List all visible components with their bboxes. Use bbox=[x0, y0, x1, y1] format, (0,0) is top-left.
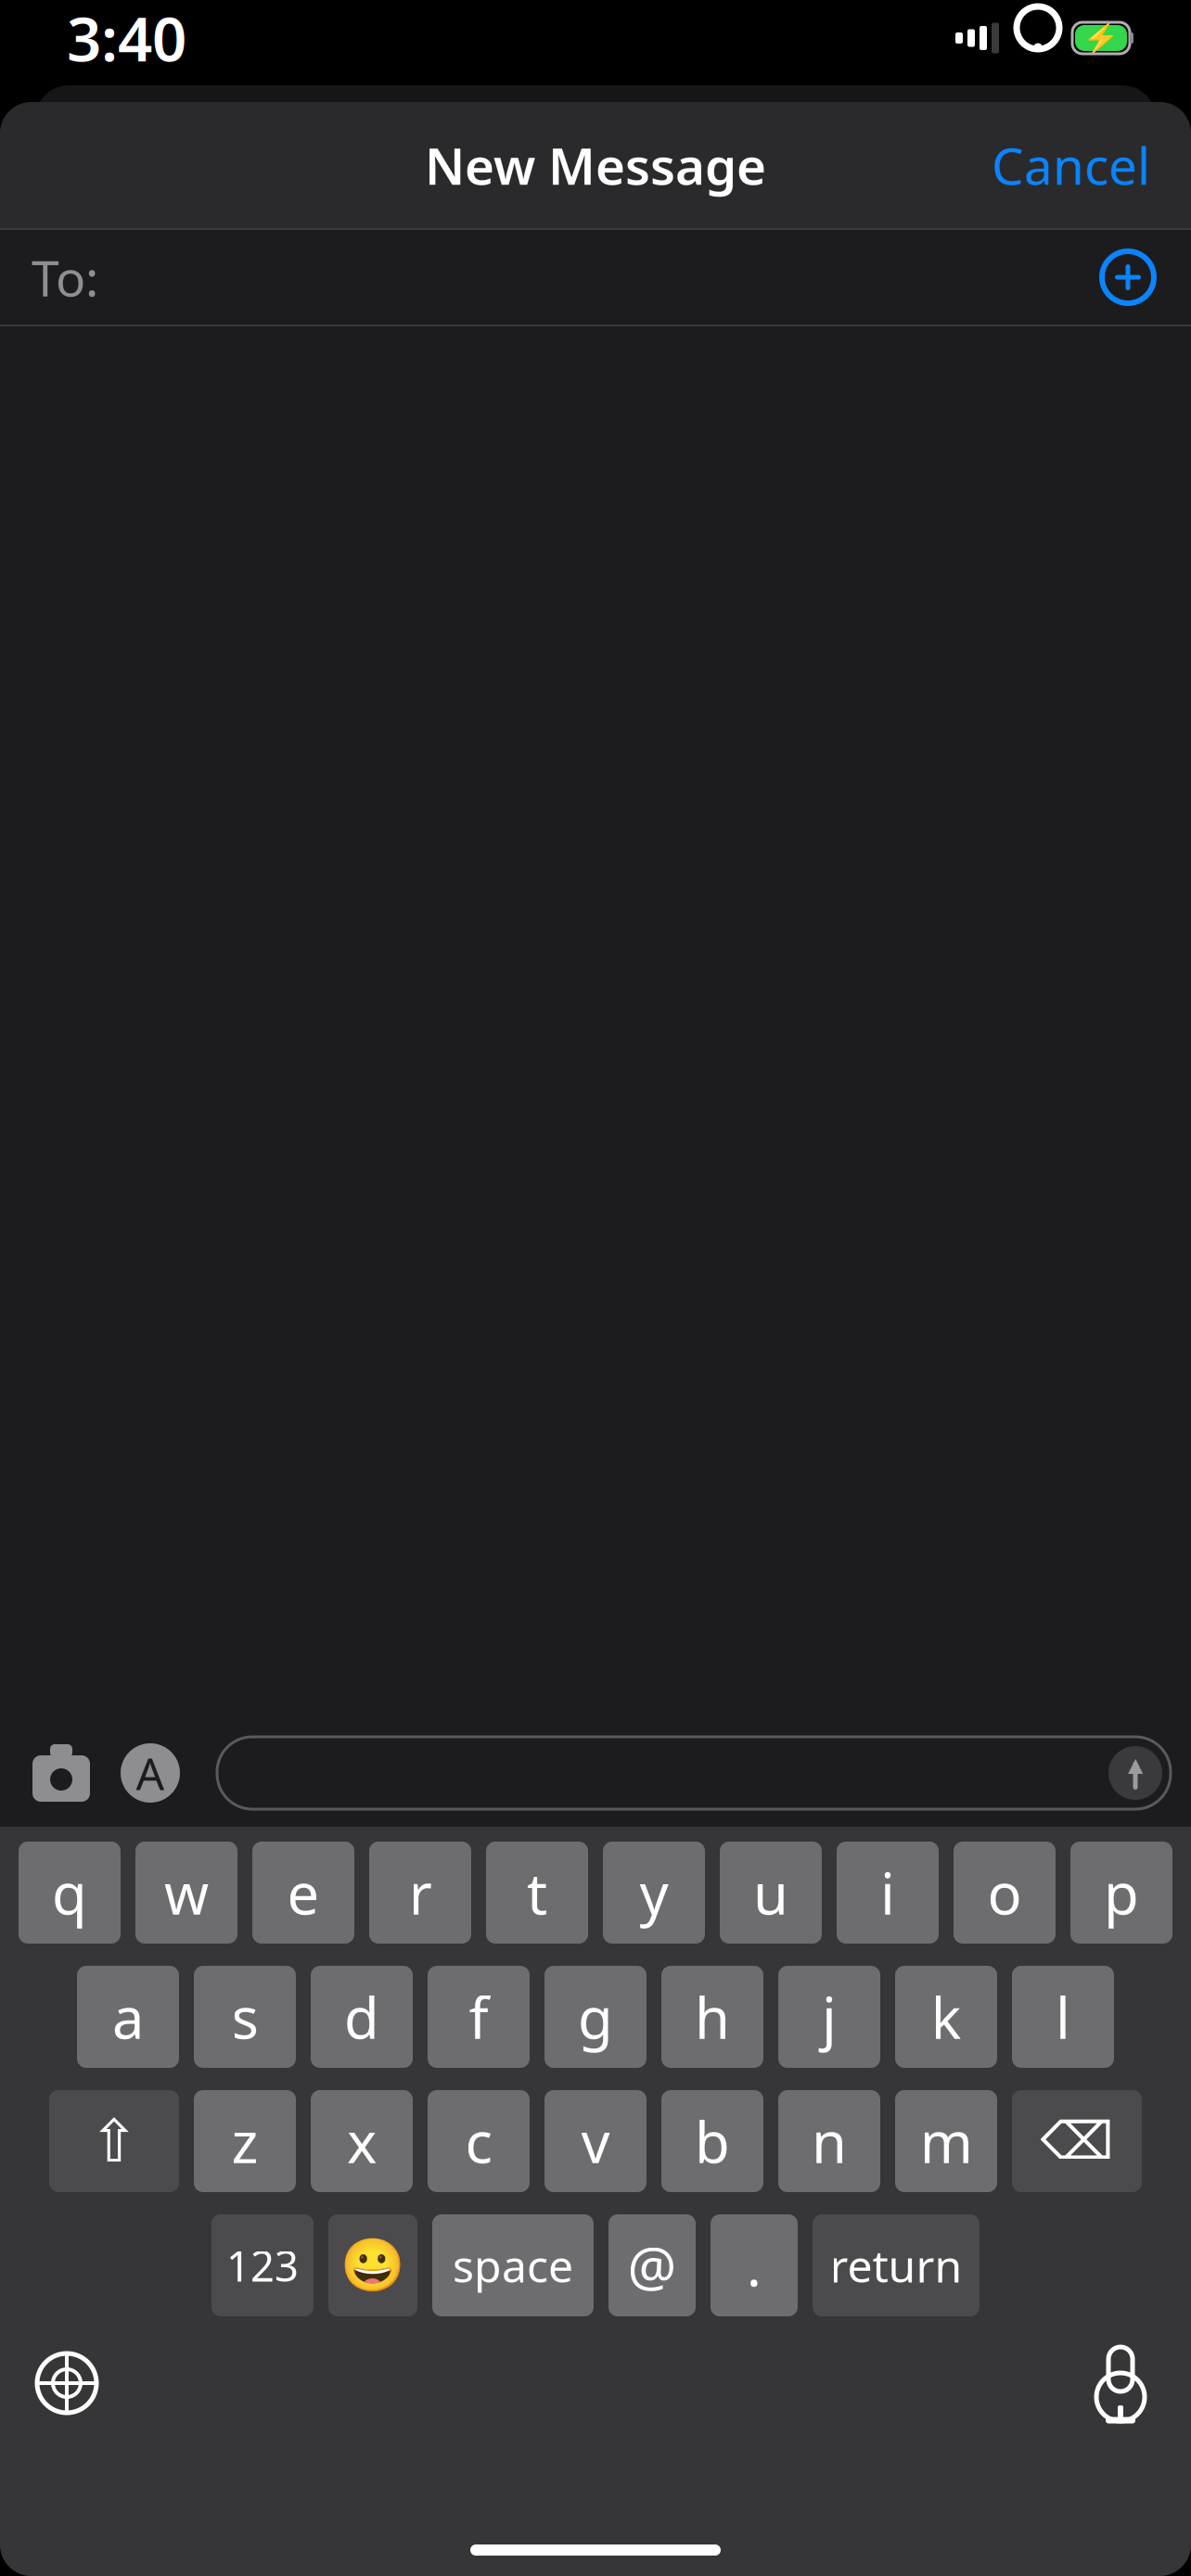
staticText: A bbox=[136, 1743, 165, 1802]
staticText: c bbox=[465, 2103, 492, 2179]
button[interactable]: l bbox=[1012, 1966, 1114, 2068]
button[interactable]: return bbox=[813, 2214, 980, 2316]
staticText: q bbox=[52, 1855, 87, 1930]
button[interactable]: h bbox=[661, 1966, 763, 2068]
staticText: m bbox=[920, 2103, 973, 2179]
staticText: x bbox=[347, 2103, 377, 2179]
button[interactable]: z bbox=[194, 2090, 296, 2192]
button[interactable]: y bbox=[603, 1842, 705, 1944]
button[interactable]: Camera bbox=[22, 1730, 100, 1816]
button[interactable]: s bbox=[194, 1966, 296, 2068]
staticText: ▲ bbox=[1128, 1753, 1143, 1776]
button[interactable]: 😀 bbox=[328, 2214, 417, 2316]
button[interactable]: . bbox=[711, 2214, 798, 2316]
staticText: r bbox=[409, 1855, 432, 1930]
button[interactable]: Cancel bbox=[973, 117, 1169, 214]
staticText: 😀 bbox=[340, 2236, 405, 2295]
button[interactable]: p bbox=[1070, 1842, 1172, 1944]
staticText: b bbox=[695, 2103, 730, 2179]
staticText: a bbox=[112, 1979, 144, 2055]
staticText: y bbox=[640, 1855, 668, 1930]
staticText: e bbox=[287, 1855, 320, 1930]
staticText: return bbox=[830, 2236, 962, 2295]
button[interactable]: b bbox=[661, 2090, 763, 2192]
staticText: space bbox=[453, 2236, 573, 2295]
staticText: j bbox=[822, 1979, 837, 2055]
button[interactable]: x bbox=[311, 2090, 413, 2192]
button[interactable]: m bbox=[895, 2090, 997, 2192]
button[interactable]: t bbox=[486, 1842, 588, 1944]
button[interactable]: d bbox=[311, 1966, 413, 2068]
button[interactable]: Add contact bbox=[1087, 236, 1169, 318]
staticText: z bbox=[231, 2103, 258, 2179]
button[interactable]: g bbox=[544, 1966, 647, 2068]
staticText: ⚡ bbox=[1082, 21, 1120, 55]
button[interactable]: c bbox=[428, 2090, 530, 2192]
staticText: h bbox=[695, 1979, 730, 2055]
staticText: g bbox=[578, 1979, 613, 2055]
button[interactable]: ⌫ bbox=[1012, 2090, 1142, 2192]
staticText: k bbox=[931, 1979, 961, 2055]
staticText: ⇧ bbox=[89, 2107, 139, 2175]
button[interactable]: ⇧ bbox=[49, 2090, 179, 2192]
staticText: New Message bbox=[425, 131, 766, 199]
button[interactable]: n bbox=[778, 2090, 880, 2192]
button[interactable]: u bbox=[720, 1842, 822, 1944]
button[interactable]: Message field bbox=[217, 1737, 1171, 1809]
button[interactable]: v bbox=[544, 2090, 647, 2192]
button[interactable]: r bbox=[369, 1842, 471, 1944]
button[interactable]: q bbox=[19, 1842, 121, 1944]
button[interactable]: space bbox=[432, 2214, 594, 2316]
staticText: t bbox=[527, 1855, 547, 1930]
staticText: p bbox=[1104, 1855, 1139, 1930]
button[interactable]: k bbox=[895, 1966, 997, 2068]
button[interactable]: 123 bbox=[211, 2214, 314, 2316]
staticText: Cancel bbox=[992, 131, 1150, 199]
button[interactable]: i bbox=[837, 1842, 939, 1944]
staticText: 3:40 bbox=[67, 0, 186, 78]
staticText: s bbox=[231, 1979, 258, 2055]
staticText: u bbox=[753, 1855, 788, 1930]
staticText: @ bbox=[628, 2229, 677, 2301]
button[interactable]: Apps bbox=[111, 1730, 189, 1816]
button[interactable]: a bbox=[77, 1966, 179, 2068]
button[interactable]: @ bbox=[608, 2214, 696, 2316]
staticText: o bbox=[987, 1855, 1022, 1930]
staticText: f bbox=[469, 1979, 488, 2055]
staticText: w bbox=[164, 1855, 209, 1930]
button[interactable]: j bbox=[778, 1966, 880, 2068]
staticText: . bbox=[747, 2229, 762, 2301]
staticText: 123 bbox=[226, 2237, 299, 2293]
button[interactable]: Switch keyboard bbox=[20, 2337, 113, 2429]
staticText: i bbox=[880, 1855, 895, 1930]
staticText: To: bbox=[32, 244, 98, 310]
button[interactable]: f bbox=[428, 1966, 530, 2068]
button[interactable]: Dictation bbox=[1074, 2337, 1167, 2429]
button[interactable]: o bbox=[954, 1842, 1056, 1944]
staticText: d bbox=[344, 1979, 379, 2055]
staticText: l bbox=[1056, 1979, 1070, 2055]
staticText: v bbox=[581, 2103, 610, 2179]
button[interactable]: e bbox=[252, 1842, 354, 1944]
button[interactable]: w bbox=[135, 1842, 237, 1944]
staticText: ⌫ bbox=[1040, 2112, 1114, 2171]
staticText: n bbox=[812, 2103, 847, 2179]
